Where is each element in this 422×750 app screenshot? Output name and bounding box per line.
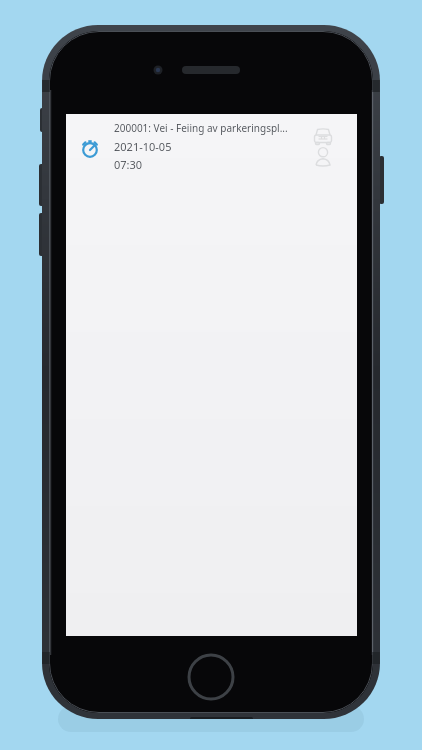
button[interactable]: 200001: Vei - Feiing av parkeringspl... <box>66 114 357 184</box>
button[interactable] <box>185 651 237 703</box>
staticText: 200001: Vei - Feiing av parkeringspl... <box>114 121 344 139</box>
staticText: 07:30 <box>114 157 304 175</box>
staticText: 2021-10-05 <box>114 139 304 157</box>
